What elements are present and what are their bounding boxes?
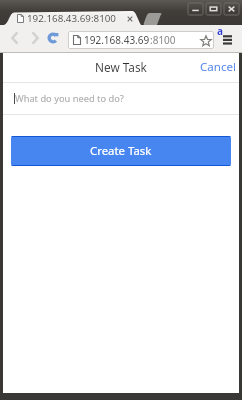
- button[interactable]: Bookmark: [199, 34, 212, 47]
- button[interactable]: Close tab: [125, 14, 135, 24]
- button[interactable]: Back: [5, 29, 23, 47]
- staticText: What do you need to do?: [15, 92, 124, 105]
- staticText: :8100: [150, 33, 176, 47]
- button[interactable]: Create Task: [11, 136, 231, 166]
- button[interactable]: New tab: [143, 13, 162, 25]
- staticText: Create Task: [90, 143, 152, 159]
- button[interactable]: Menu: [216, 27, 238, 51]
- staticText: 192.168.43.69:8100: [27, 12, 116, 25]
- button[interactable]: Cancel: [192, 54, 239, 82]
- button[interactable]: Reload: [44, 29, 62, 47]
- staticText: New Task: [95, 59, 147, 75]
- button[interactable]: Minimize: [188, 3, 203, 15]
- button[interactable]: Forward: [26, 29, 44, 47]
- button[interactable]: 192.168.43.69:8100: [4, 11, 141, 25]
- staticText: 192.168.43.69: [84, 33, 150, 47]
- button[interactable]: What do you need to do?: [3, 83, 239, 114]
- button[interactable]: Maximize: [206, 3, 221, 15]
- staticText: a: [217, 24, 223, 38]
- button[interactable]: 192.168.43.69: [68, 31, 214, 49]
- button[interactable]: Close: [224, 3, 239, 15]
- staticText: Cancel: [200, 59, 237, 75]
